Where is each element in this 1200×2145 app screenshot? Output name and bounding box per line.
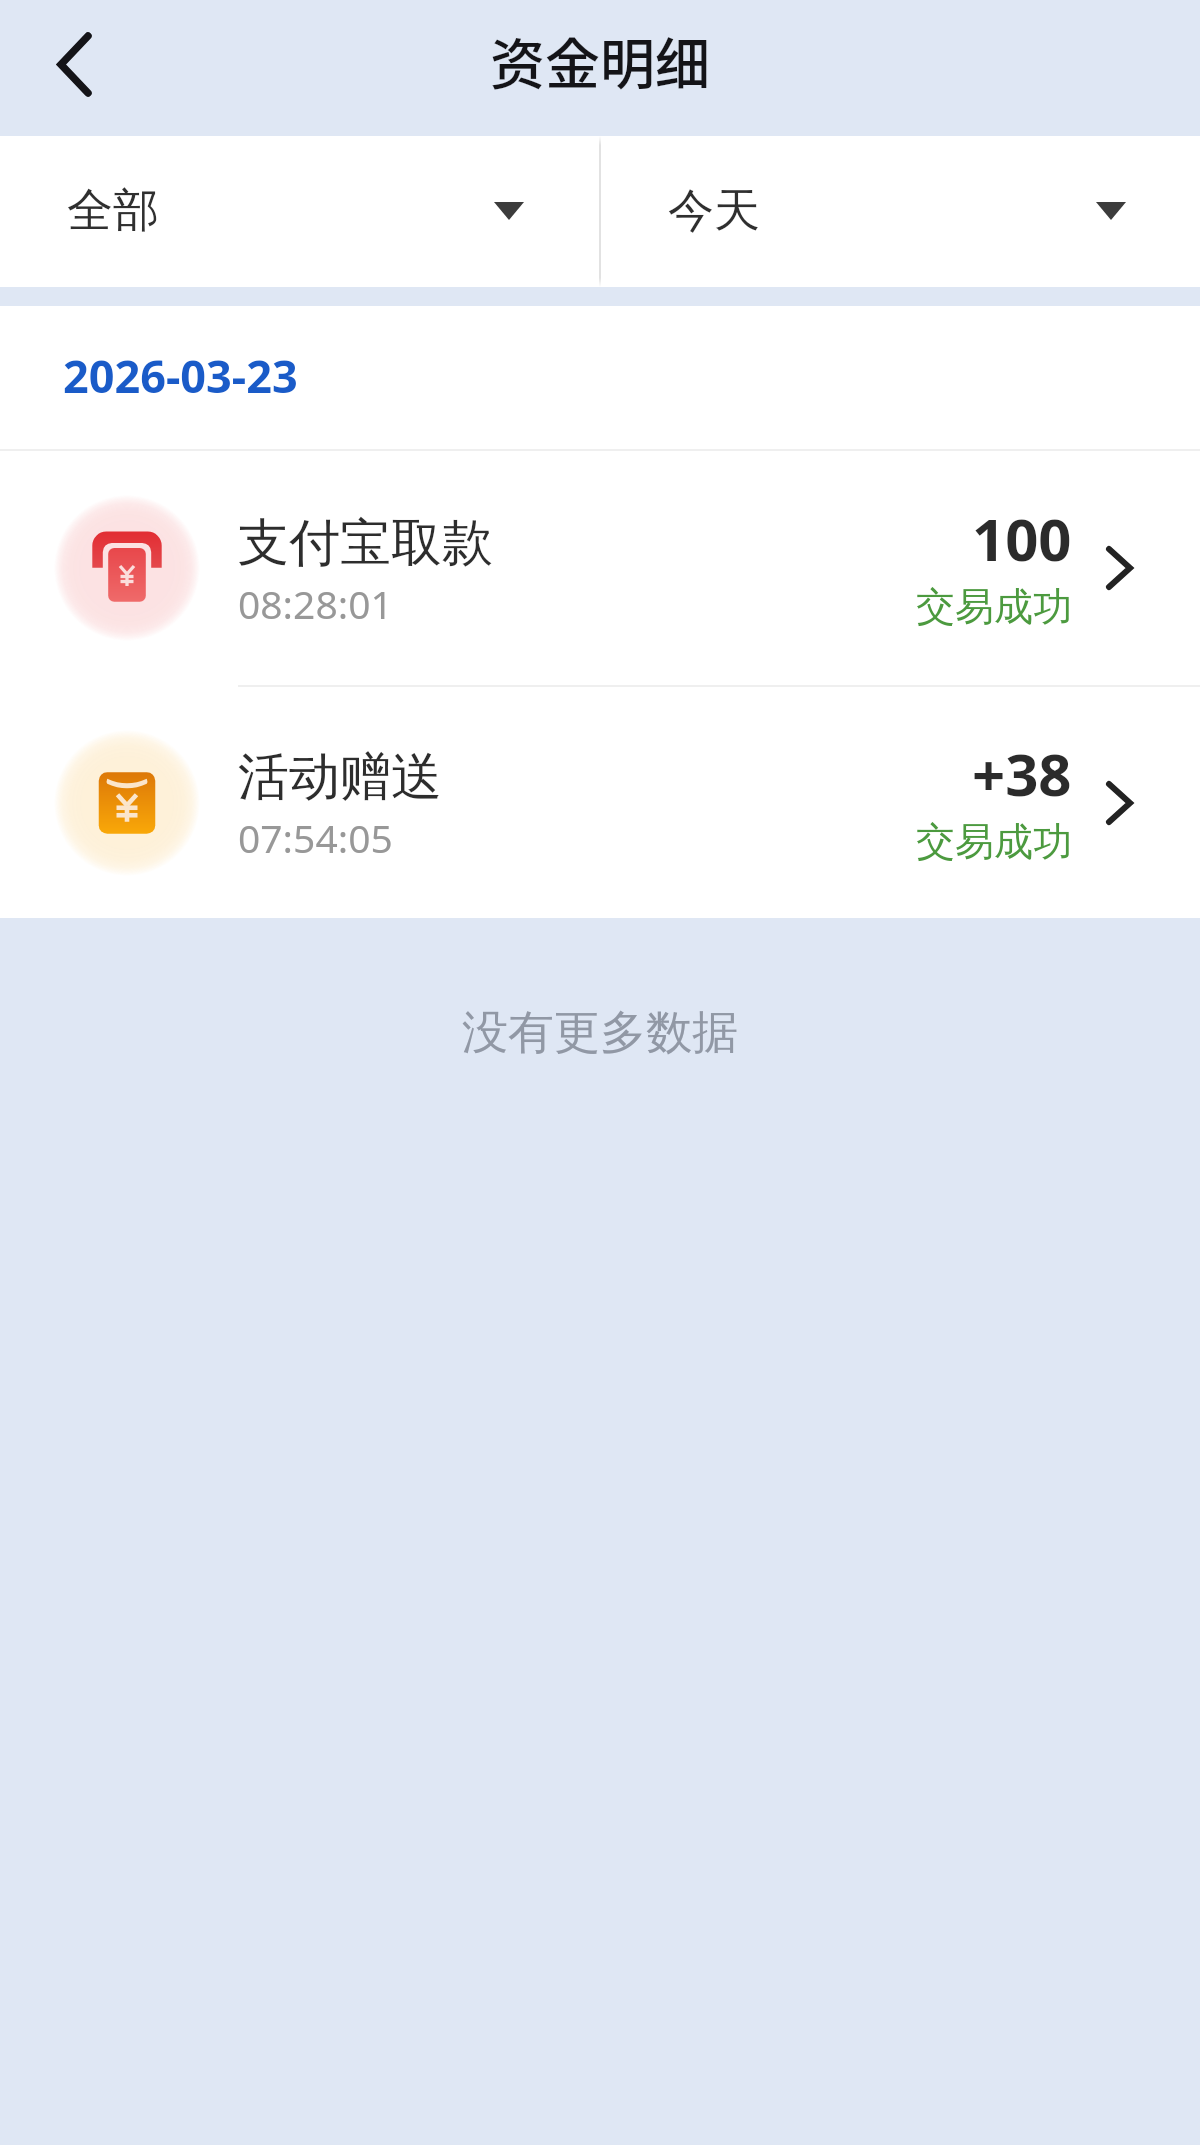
staticText: 交易成功	[916, 817, 1072, 866]
button[interactable]: 活动赠送	[0, 687, 1200, 918]
staticText: 交易成功	[916, 582, 1072, 631]
staticText: 08:28:01	[238, 577, 393, 630]
staticText: 2026-03-23	[63, 345, 298, 406]
button[interactable]: 全部	[0, 136, 599, 287]
button[interactable]: 今天	[601, 136, 1200, 287]
button[interactable]: Back	[24, 14, 124, 114]
staticText: 100	[972, 499, 1072, 578]
staticText: 全部	[67, 182, 159, 240]
staticText: 没有更多数据	[462, 1004, 738, 1062]
button[interactable]: 支付宝取款	[0, 451, 1200, 685]
staticText: 资金明细	[490, 20, 711, 100]
staticText: 支付宝取款	[238, 511, 493, 575]
staticText: +38	[972, 734, 1072, 813]
staticText: 活动赠送	[238, 745, 442, 809]
staticText: 07:54:05	[238, 811, 393, 864]
staticText: 今天	[668, 182, 760, 240]
